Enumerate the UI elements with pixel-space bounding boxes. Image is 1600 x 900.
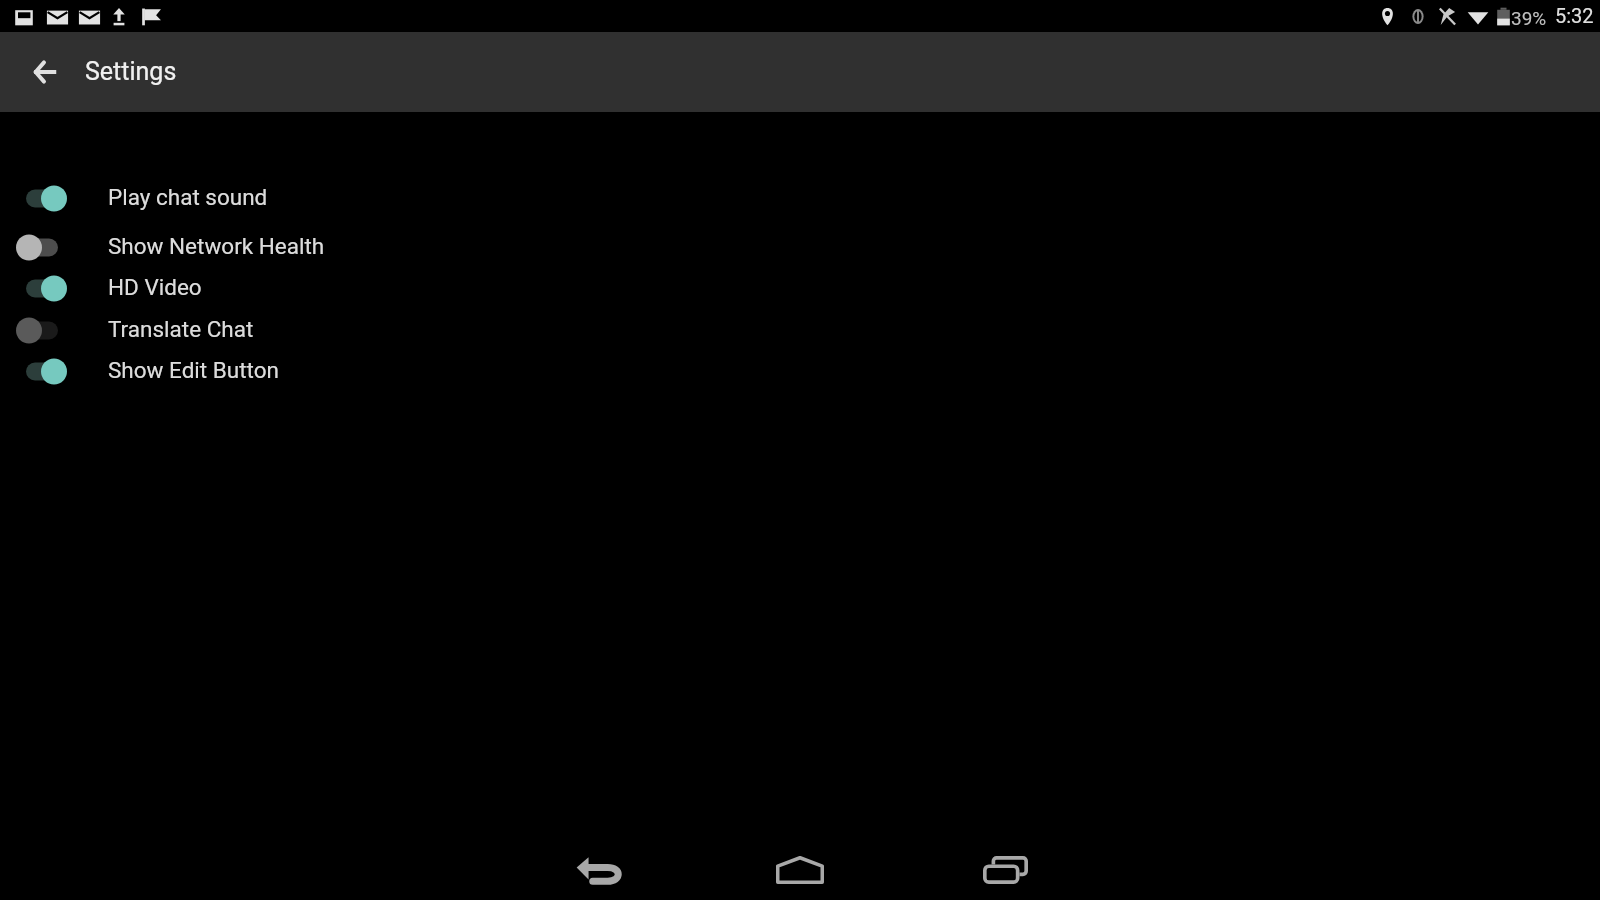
- button[interactable]: Recent apps: [952, 830, 1058, 900]
- button[interactable]: Show Edit Button, on: [0, 351, 1600, 392]
- button[interactable]: Show Edit Button, on: [0, 351, 80, 392]
- button[interactable]: Show Network Health, off: [0, 227, 1600, 268]
- staticText: Play chat sound: [108, 184, 268, 210]
- button[interactable]: Home: [747, 830, 853, 900]
- staticText: Show Edit Button: [108, 357, 279, 383]
- button[interactable]: HD Video, on: [0, 268, 1600, 309]
- button[interactable]: Play chat sound, on: [0, 178, 80, 219]
- button[interactable]: Translate Chat, off: [0, 310, 80, 351]
- button[interactable]: Show Network Health, off: [0, 227, 80, 268]
- staticText: Translate Chat: [108, 316, 254, 342]
- button[interactable]: HD Video, on: [0, 268, 80, 309]
- button[interactable]: Back: [545, 830, 651, 900]
- staticText: Settings: [85, 57, 177, 86]
- staticText: 39%: [1511, 7, 1547, 29]
- button[interactable]: Translate Chat, off: [0, 310, 1600, 351]
- button[interactable]: Play chat sound, on: [0, 178, 1600, 219]
- button[interactable]: Navigate up: [20, 48, 68, 96]
- staticText: HD Video: [108, 274, 202, 300]
- staticText: Show Network Health: [108, 233, 325, 259]
- staticText: 5:32: [1555, 4, 1594, 27]
